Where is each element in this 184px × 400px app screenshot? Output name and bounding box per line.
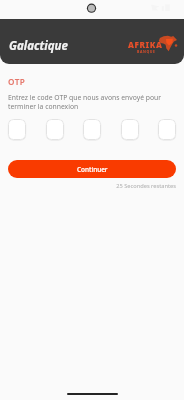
- staticText: BANQUE: [137, 49, 156, 54]
- staticText: Entrez le code OTP que nous avons envoyé…: [8, 93, 176, 111]
- staticText: OTP: [8, 76, 26, 87]
- button[interactable]: [46, 119, 64, 140]
- button[interactable]: [8, 119, 26, 140]
- button[interactable]: [121, 119, 139, 140]
- staticText: Galactique: [9, 38, 68, 54]
- staticText: AFRIKA: [128, 39, 163, 50]
- button[interactable]: [158, 119, 176, 140]
- button[interactable]: Continuer: [8, 160, 176, 178]
- staticText: Continuer: [77, 165, 108, 174]
- staticText: 25 Secondes restantes: [8, 182, 176, 190]
- button[interactable]: [83, 119, 101, 140]
